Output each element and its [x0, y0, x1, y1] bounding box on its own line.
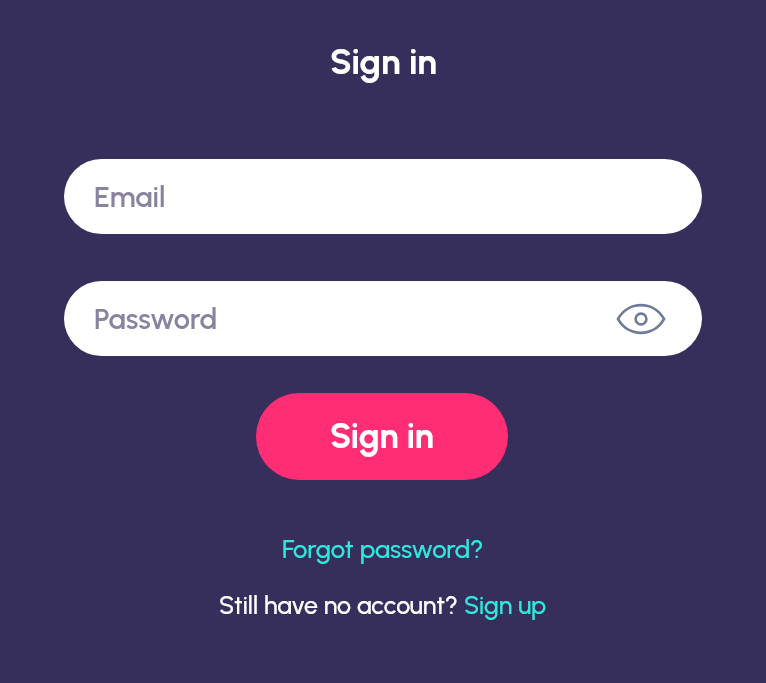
button[interactable]: Sign up: [464, 590, 547, 620]
button[interactable]: Forgot password?: [282, 534, 484, 565]
staticText: Password: [94, 301, 218, 336]
staticText: Sign up: [464, 590, 547, 620]
staticText: Sign in: [330, 416, 434, 457]
staticText: Forgot password?: [282, 534, 484, 565]
button[interactable]: Show password: [615, 293, 667, 345]
button[interactable]: Password: [64, 281, 702, 356]
staticText: Email: [94, 179, 166, 214]
staticText: Sign in: [330, 41, 437, 83]
button[interactable]: Sign in: [256, 393, 508, 480]
staticText: Still have no account?: [219, 590, 464, 620]
button[interactable]: Email: [64, 159, 702, 234]
